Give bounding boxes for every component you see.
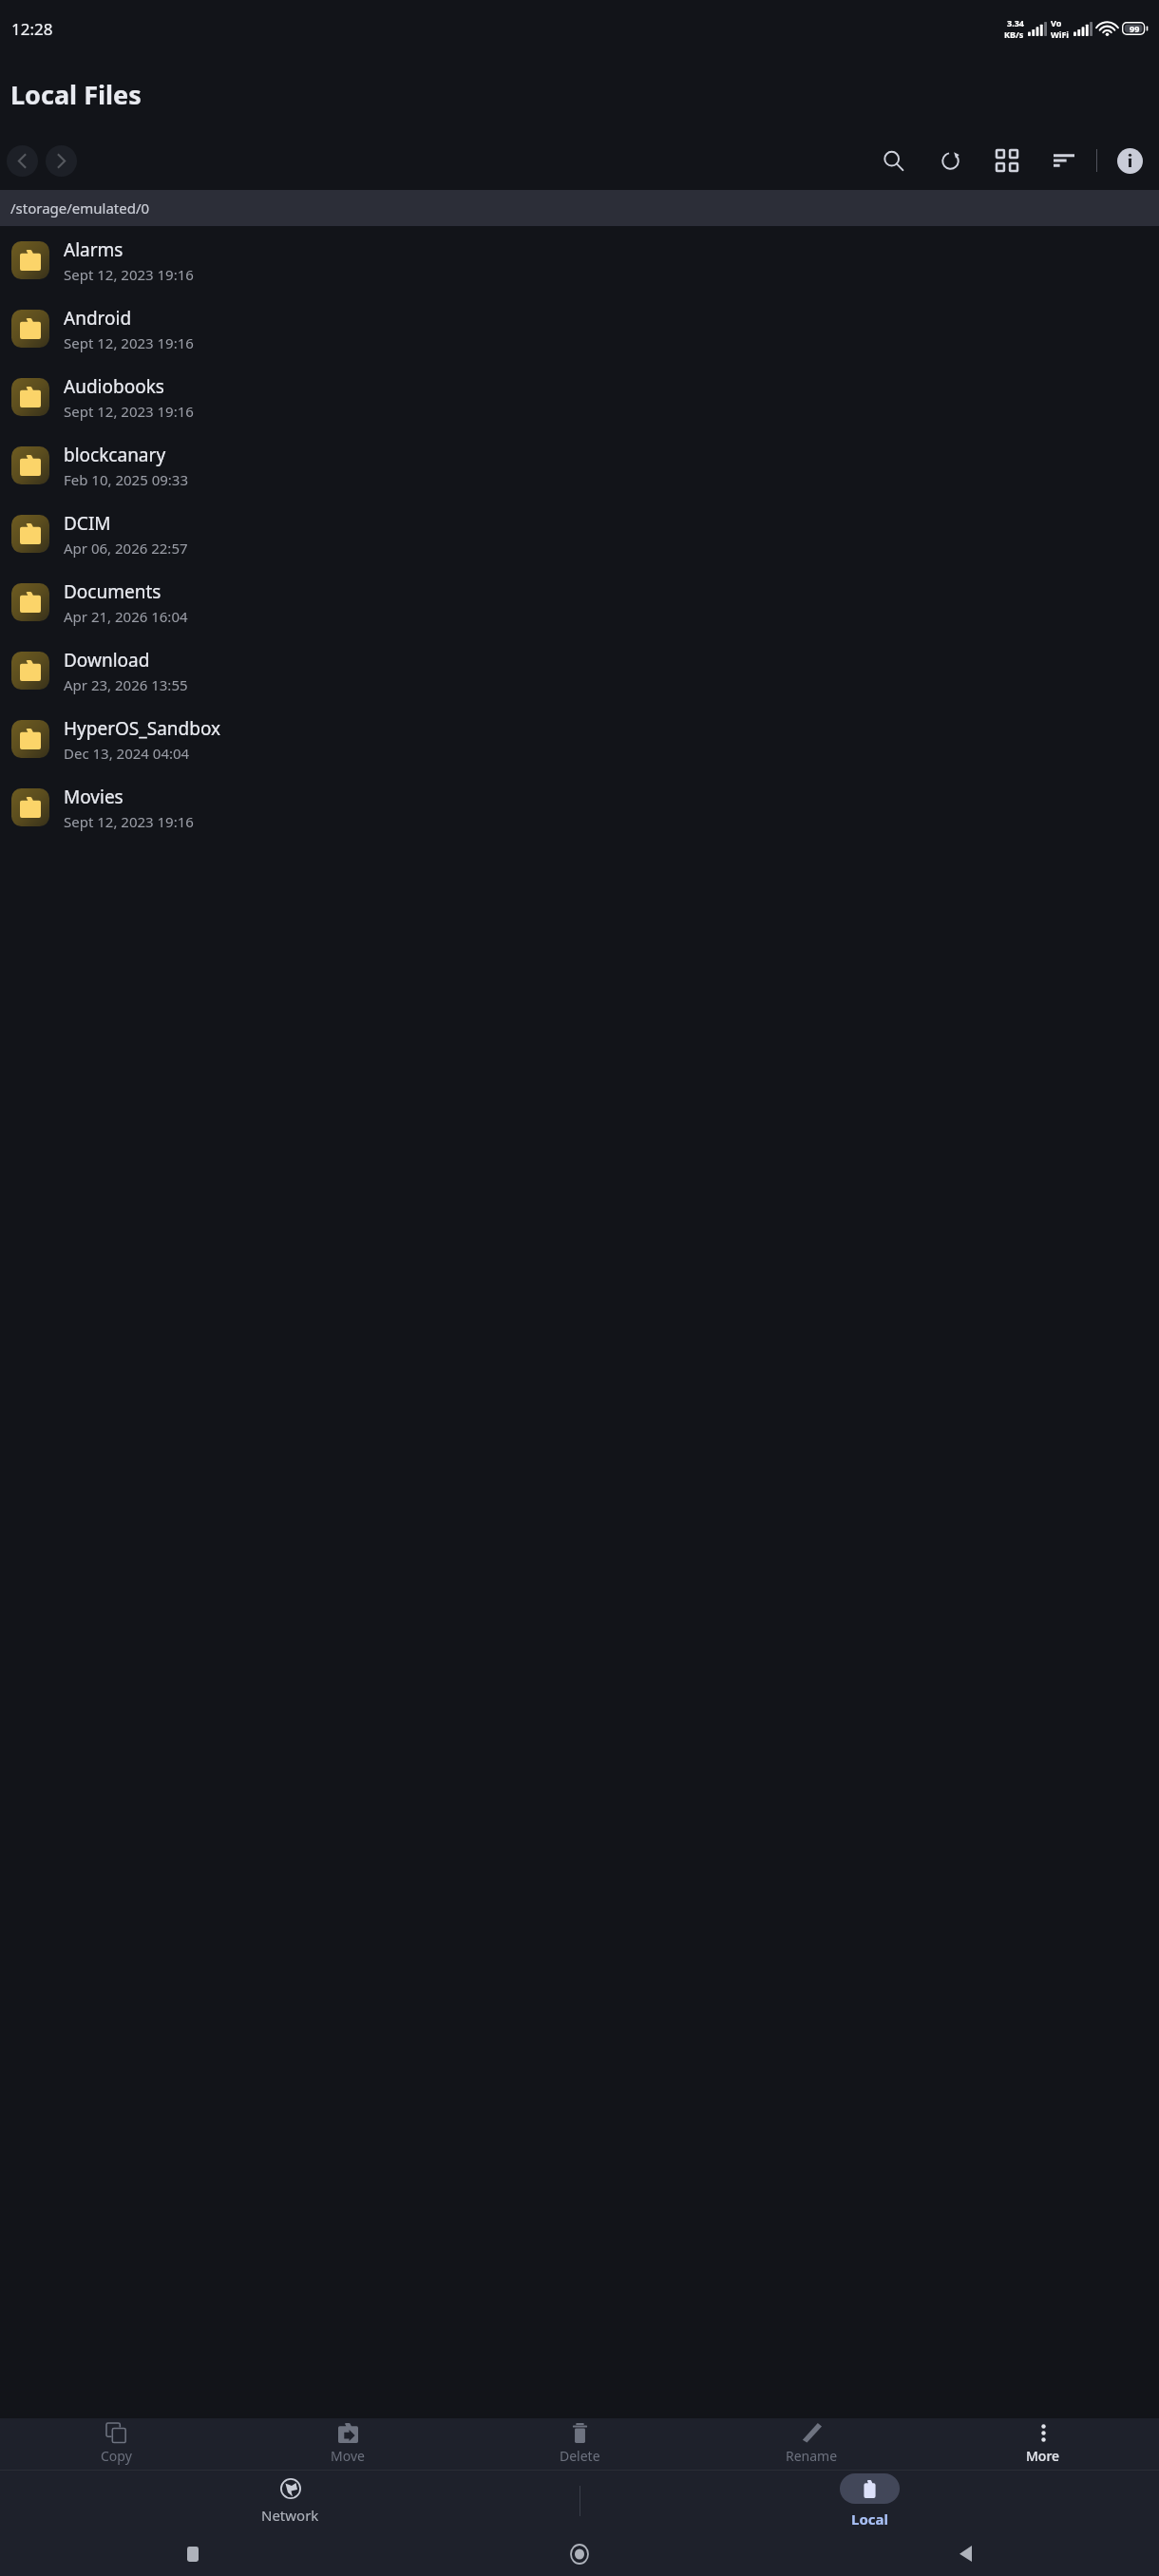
button[interactable]: Forward <box>46 145 77 177</box>
staticText: DCIM <box>64 511 111 536</box>
button[interactable]: Recents <box>0 2531 386 2576</box>
button[interactable]: Audiobooks <box>0 363 1159 431</box>
button[interactable]: Movies <box>0 773 1159 842</box>
staticText: 99 <box>1130 23 1140 34</box>
staticText: Network <box>261 2506 319 2525</box>
button[interactable]: blockcanary <box>0 431 1159 500</box>
staticText: Sept 12, 2023 19:16 <box>64 812 194 831</box>
button[interactable]: Network <box>0 2471 579 2531</box>
staticText: Vo <box>1051 17 1062 28</box>
staticText: Apr 21, 2026 16:04 <box>64 607 188 626</box>
button[interactable]: Documents <box>0 568 1159 636</box>
staticText: Sept 12, 2023 19:16 <box>64 333 194 352</box>
staticText: Audiobooks <box>64 374 164 399</box>
button[interactable]: Delete <box>464 2418 695 2470</box>
staticText: Android <box>64 306 132 331</box>
staticText: Sept 12, 2023 19:16 <box>64 265 194 284</box>
staticText: Apr 06, 2026 22:57 <box>64 539 188 558</box>
button[interactable]: Copy <box>0 2418 232 2470</box>
staticText: Download <box>64 648 150 672</box>
button[interactable]: More <box>927 2418 1159 2470</box>
staticText: Local Files <box>10 77 142 112</box>
button[interactable]: /storage/emulated/0 <box>0 190 1159 226</box>
staticText: Move <box>331 2447 365 2465</box>
staticText: Sept 12, 2023 19:16 <box>64 402 194 421</box>
button[interactable]: DCIM <box>0 500 1159 568</box>
button[interactable]: Alarms <box>0 226 1159 294</box>
button[interactable]: Grid view <box>987 141 1027 180</box>
button[interactable]: Home <box>386 2531 772 2576</box>
staticText: 3.34 <box>1007 17 1024 28</box>
button[interactable]: Download <box>0 636 1159 705</box>
staticText: Rename <box>786 2447 838 2465</box>
staticText: Movies <box>64 785 123 809</box>
staticText: Feb 10, 2025 09:33 <box>64 470 189 489</box>
staticText: WiFi <box>1051 28 1070 40</box>
button[interactable]: Move <box>232 2418 464 2470</box>
button[interactable]: Refresh <box>930 141 970 180</box>
button[interactable]: Info <box>1110 141 1149 180</box>
button[interactable]: Search <box>873 141 913 180</box>
button[interactable]: Rename <box>695 2418 927 2470</box>
staticText: Local <box>851 2510 888 2529</box>
staticText: Delete <box>560 2447 600 2465</box>
staticText: Dec 13, 2024 04:04 <box>64 744 190 763</box>
staticText: More <box>1026 2447 1060 2465</box>
staticText: Copy <box>101 2447 132 2465</box>
staticText: HyperOS_Sandbox <box>64 716 221 741</box>
staticText: blockcanary <box>64 443 166 467</box>
staticText: Documents <box>64 579 161 604</box>
button[interactable]: Local <box>579 2471 1159 2531</box>
staticText: /storage/emulated/0 <box>10 199 150 218</box>
button[interactable]: Back <box>772 2531 1159 2576</box>
button[interactable]: Back <box>7 145 38 177</box>
staticText: Alarms <box>64 237 123 262</box>
button[interactable]: Android <box>0 294 1159 363</box>
staticText: 12:28 <box>11 18 53 40</box>
button[interactable]: HyperOS_Sandbox <box>0 705 1159 773</box>
staticText: Apr 23, 2026 13:55 <box>64 675 188 694</box>
button[interactable]: Sort <box>1044 141 1084 180</box>
staticText: KB/s <box>1004 28 1024 40</box>
